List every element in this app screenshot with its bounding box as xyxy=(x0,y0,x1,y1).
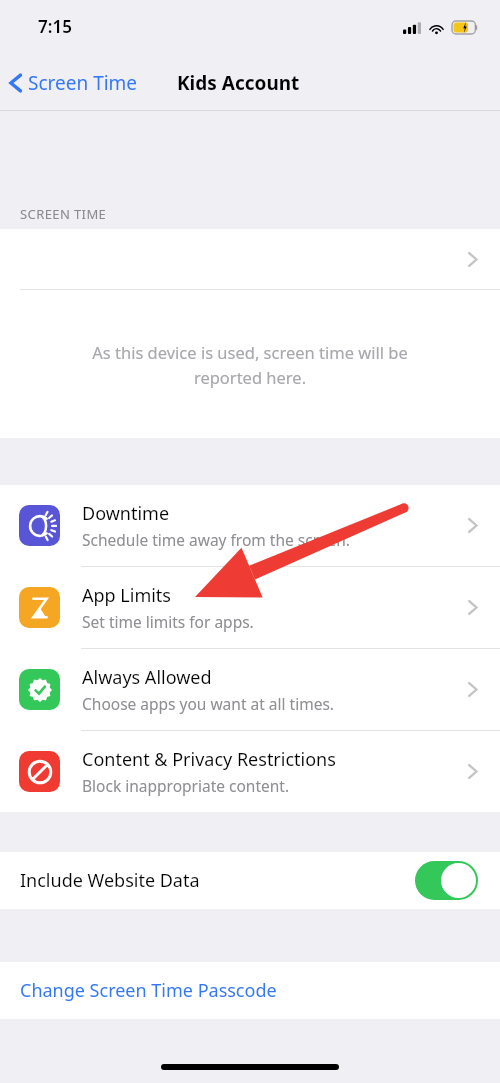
staticText: Set time limits for apps. xyxy=(82,611,254,632)
staticText: Kids Account xyxy=(177,70,300,96)
button[interactable]: App Limits xyxy=(0,567,500,648)
staticText: As this device is used, screen time will… xyxy=(92,341,408,388)
staticText: Downtime xyxy=(82,501,170,526)
other: Include Website Data toggle, on xyxy=(415,861,478,900)
staticText: App Limits xyxy=(82,583,171,608)
staticText: Content & Privacy Restrictions xyxy=(82,747,336,772)
button[interactable]: Always Allowed xyxy=(0,649,500,730)
staticText: Change Screen Time Passcode xyxy=(20,978,277,1003)
button[interactable]: Change Screen Time Passcode xyxy=(0,962,500,1019)
button[interactable]: Content & Privacy Restrictions xyxy=(0,731,500,812)
staticText: Screen Time xyxy=(28,70,138,96)
staticText: Choose apps you want at all times. xyxy=(82,693,334,714)
button[interactable]: Include Website Data xyxy=(0,852,500,909)
staticText: 7:15 xyxy=(38,15,72,38)
button[interactable]: Screen Time xyxy=(8,70,138,96)
staticText: Schedule time away from the screen. xyxy=(82,529,350,550)
staticText: Include Website Data xyxy=(20,868,415,893)
button[interactable]: Downtime xyxy=(0,485,500,566)
staticText: Always Allowed xyxy=(82,665,212,690)
staticText: SCREEN TIME xyxy=(20,205,107,223)
staticText: Block inappropriate content. xyxy=(82,775,290,796)
